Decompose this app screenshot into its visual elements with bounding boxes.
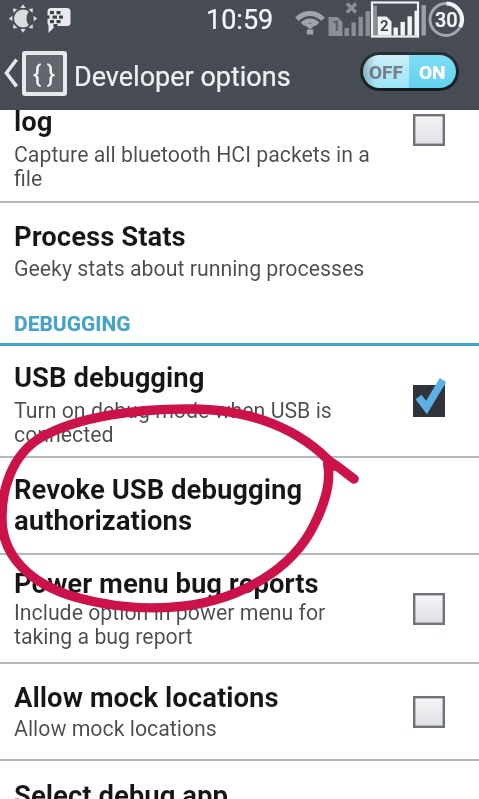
button[interactable]: Checked: [412, 384, 446, 418]
staticText: OFF: [369, 61, 403, 83]
button[interactable]: [0, 761, 479, 799]
staticText: Power menu bug reports: [14, 567, 319, 599]
staticText: Turn on debug mode when USB is connected: [14, 398, 332, 448]
staticText: USB debugging: [14, 361, 205, 393]
button[interactable]: [0, 458, 479, 553]
button[interactable]: [0, 664, 479, 759]
staticText: Select debug app: [14, 779, 228, 799]
staticText: 2: [380, 17, 389, 35]
staticText: Include option in power menu for taking …: [14, 600, 326, 650]
staticText: Allow mock locations: [14, 716, 217, 741]
button[interactable]: Unchecked: [412, 113, 446, 147]
staticText: { }: [33, 60, 56, 88]
button[interactable]: [0, 110, 479, 202]
button[interactable]: [0, 555, 479, 662]
staticText: Allow mock locations: [14, 681, 279, 713]
button[interactable]: [0, 204, 479, 345]
staticText: 1: [332, 17, 341, 35]
button[interactable]: Unchecked: [412, 592, 446, 626]
staticText: log: [14, 105, 53, 137]
staticText: 30: [435, 8, 458, 31]
staticText: Process Stats: [14, 220, 186, 252]
button[interactable]: Navigate up: [2, 48, 67, 98]
staticText: Developer options: [74, 61, 291, 93]
staticText: ON: [419, 61, 446, 83]
staticText: Revoke USB debugging authorizations: [14, 473, 303, 537]
button[interactable]: Unchecked: [412, 695, 446, 729]
staticText: 10:59: [206, 4, 274, 36]
staticText: Capture all bluetooth HCI packets in a f…: [14, 142, 370, 192]
staticText: DEBUGGING: [14, 312, 131, 337]
button[interactable]: [0, 345, 479, 456]
staticText: Geeky stats about running processes: [14, 256, 365, 281]
button[interactable]: Developer options enabled: [363, 55, 456, 88]
